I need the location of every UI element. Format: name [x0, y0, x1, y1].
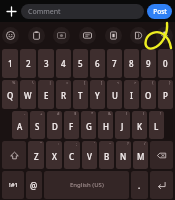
button[interactable]: " [28, 141, 44, 169]
staticText: ' [94, 141, 95, 146]
staticText: ! [160, 111, 162, 116]
staticText: C [69, 151, 75, 162]
button[interactable]: { [141, 80, 156, 109]
button[interactable]: Voice input [156, 27, 173, 44]
staticText: / [144, 141, 146, 146]
button[interactable]: !#1 [2, 171, 24, 199]
staticText: N [120, 151, 127, 162]
staticText: 6 [95, 58, 100, 69]
staticText: ) [143, 111, 145, 116]
button[interactable]: 3 [38, 49, 54, 78]
staticText: P [163, 90, 168, 101]
button[interactable]: Add attachment [3, 3, 19, 19]
button[interactable]: $ [64, 111, 79, 139]
staticText: T [78, 90, 83, 101]
staticText: Q [7, 90, 14, 101]
button[interactable]: Post [147, 4, 172, 19]
button[interactable]: Translate [130, 27, 147, 44]
staticText: 1 [8, 58, 13, 69]
staticText: . [138, 180, 141, 191]
button[interactable]: Clipboard [28, 27, 45, 44]
button[interactable]: % [2, 80, 18, 109]
staticText: : [58, 141, 60, 146]
button[interactable]: Sticker [79, 27, 96, 44]
staticText: S [35, 121, 40, 132]
staticText: 7 [112, 58, 117, 69]
button[interactable]: ( [115, 111, 130, 139]
staticText: ; [76, 141, 78, 146]
staticText: L [154, 121, 159, 132]
button[interactable]: Text editing [105, 27, 122, 44]
button[interactable]: . [131, 171, 148, 199]
button[interactable]: ; [64, 141, 80, 169]
button[interactable]: English (US) [44, 171, 129, 199]
staticText: W [24, 90, 32, 101]
button[interactable]: : [46, 141, 62, 169]
staticText: 9 [146, 58, 151, 69]
staticText: X [52, 151, 57, 162]
staticText: M [137, 151, 145, 162]
staticText: " [40, 141, 42, 146]
button[interactable]: ' [82, 141, 97, 169]
staticText: ~ [109, 141, 112, 146]
staticText: | [49, 80, 52, 85]
staticText: ( [126, 111, 128, 116]
button[interactable]: ~ [99, 141, 114, 169]
staticText: $ [74, 111, 77, 116]
button[interactable]: = [56, 80, 71, 109]
button[interactable]: ? [116, 141, 131, 169]
staticText: Z [34, 151, 39, 162]
staticText: U [112, 90, 118, 101]
button[interactable]: 6 [90, 49, 105, 78]
staticText: ] [101, 80, 103, 85]
button[interactable]: \ [20, 80, 36, 109]
staticText: A [17, 121, 23, 132]
button[interactable]: & [98, 111, 113, 139]
staticText: < [117, 80, 120, 85]
button[interactable]: } [158, 80, 173, 109]
button[interactable]: | [38, 80, 54, 109]
button[interactable]: 5 [73, 49, 88, 78]
button[interactable]: 4 [56, 49, 71, 78]
staticText: K [137, 121, 143, 132]
staticText: Post [153, 7, 167, 16]
staticText: { [152, 80, 154, 85]
button[interactable]: 1 [2, 49, 18, 78]
button[interactable]: Enter [150, 171, 173, 199]
staticText: H [103, 121, 109, 132]
button[interactable]: 0 [158, 49, 173, 78]
button[interactable]: - [12, 111, 28, 139]
button[interactable]: > [124, 80, 139, 109]
staticText: G [86, 121, 92, 132]
button[interactable]: * [81, 111, 96, 139]
button[interactable]: # [47, 111, 62, 139]
button[interactable]: 7 [107, 49, 122, 78]
button[interactable]: Emoji [2, 27, 19, 44]
button[interactable]: GIF [53, 27, 70, 44]
staticText: F [69, 121, 74, 132]
staticText: & [108, 111, 111, 116]
staticText: !#1 [9, 181, 18, 189]
staticText: B [104, 151, 110, 162]
staticText: O [145, 90, 152, 101]
staticText: [ [84, 80, 86, 85]
button[interactable]: 2 [20, 49, 36, 78]
button[interactable]: ) [132, 111, 147, 139]
staticText: + [40, 111, 43, 116]
staticText: = [66, 80, 69, 85]
button[interactable]: + [30, 111, 45, 139]
button[interactable]: [ [73, 80, 88, 109]
button[interactable]: ! [149, 111, 164, 139]
button[interactable]: / [133, 141, 148, 169]
button[interactable]: @ [26, 171, 42, 199]
button[interactable]: Shift [2, 141, 26, 169]
button[interactable]: Comment [21, 4, 144, 19]
button[interactable]: Backspace [150, 141, 173, 169]
button[interactable]: 8 [124, 49, 139, 78]
button[interactable]: 9 [141, 49, 156, 78]
staticText: Y [95, 90, 100, 101]
button[interactable]: < [107, 80, 122, 109]
button[interactable]: ] [90, 80, 105, 109]
staticText: * [91, 111, 94, 116]
staticText: V [87, 151, 92, 162]
